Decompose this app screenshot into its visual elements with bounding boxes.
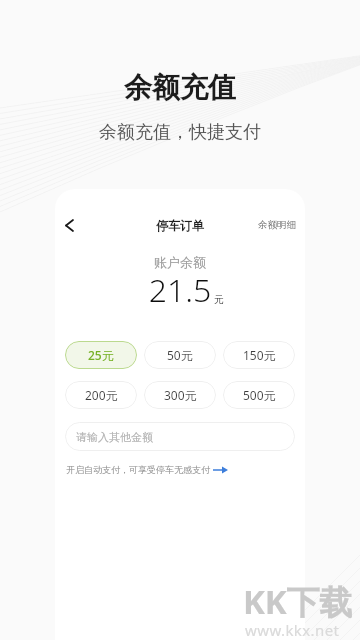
staticText: 余额充值: [0, 70, 360, 105]
staticText: 元: [214, 293, 224, 306]
staticText: 请输入其他金额: [76, 430, 153, 444]
staticText: KK下载: [243, 579, 353, 624]
button[interactable]: 500元: [223, 381, 295, 409]
staticText: 开启自动支付，可享受停车无感支付: [66, 464, 210, 475]
button[interactable]: 300元: [144, 381, 216, 409]
staticText: 25元: [88, 347, 114, 363]
button[interactable]: 200元: [65, 381, 137, 409]
staticText: 50元: [167, 347, 193, 363]
button[interactable]: 余额明细: [258, 219, 296, 231]
staticText: 500元: [243, 387, 276, 403]
button[interactable]: 25元: [65, 341, 137, 369]
button[interactable]: 返回: [57, 213, 81, 237]
button[interactable]: 50元: [144, 341, 216, 369]
staticText: 停车订单: [156, 218, 204, 233]
staticText: 150元: [243, 347, 276, 363]
staticText: 余额充值，快捷支付: [0, 121, 360, 144]
staticText: www.kkx.net: [245, 620, 340, 640]
button[interactable]: 请输入其他金额: [65, 422, 295, 451]
staticText: 账户余额: [55, 254, 305, 270]
staticText: 余额明细: [258, 219, 296, 231]
staticText: 200元: [85, 387, 118, 403]
button[interactable]: 开启自动支付，可享受停车无感支付: [66, 464, 228, 475]
staticText: 300元: [164, 387, 197, 403]
staticText: 21.5: [55, 268, 305, 312]
button[interactable]: 150元: [223, 341, 295, 369]
